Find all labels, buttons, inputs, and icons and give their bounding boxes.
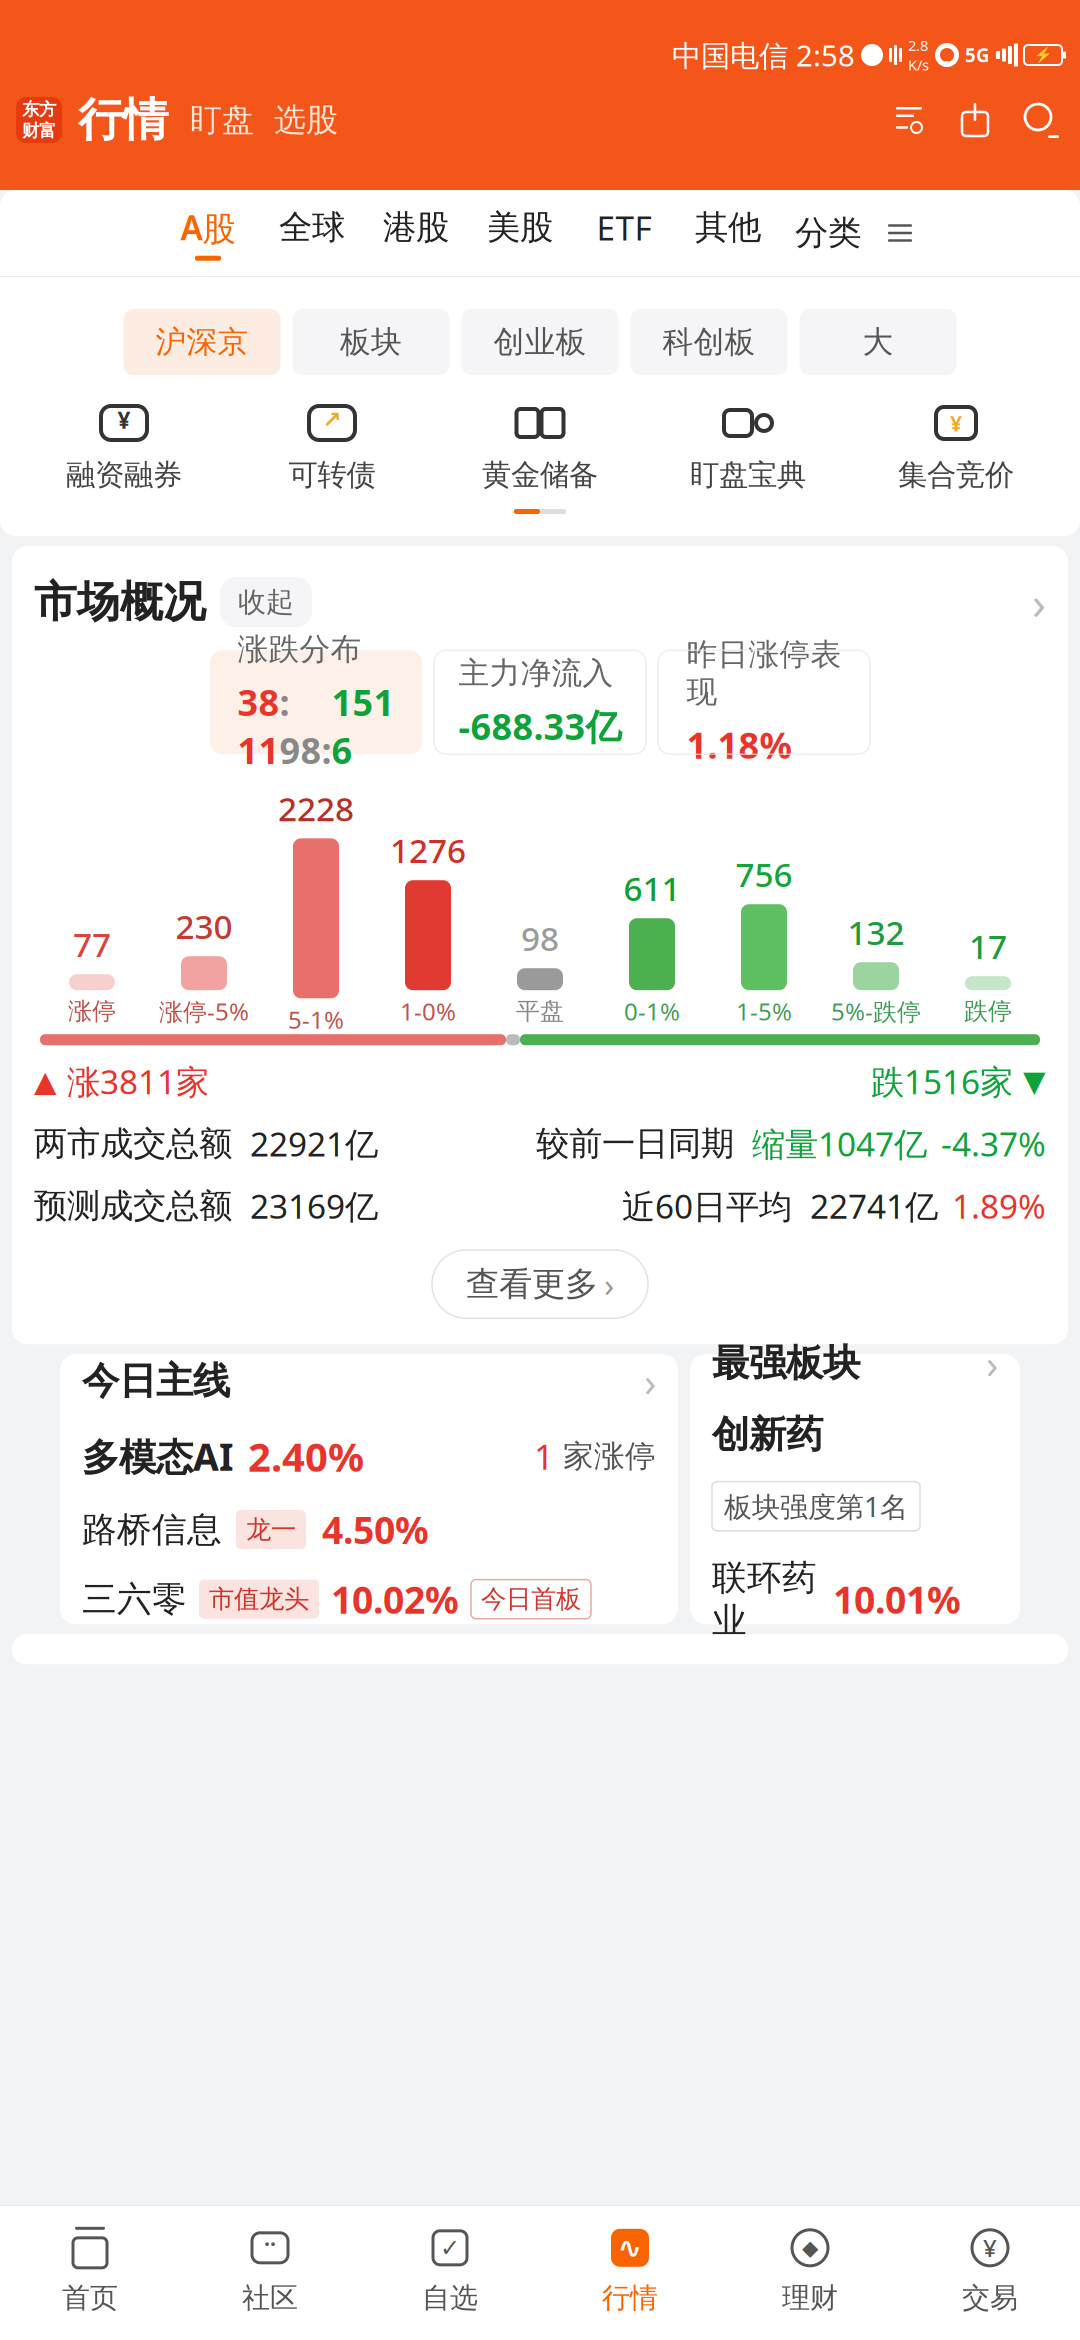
- staticText: 今日主线: [82, 1358, 230, 1404]
- staticText: 5G: [965, 43, 990, 67]
- button[interactable]: 首页: [0, 2218, 180, 2322]
- staticText: 预测成交总额: [34, 1185, 232, 1226]
- button[interactable]: ¥: [20, 391, 228, 503]
- staticText: 港股: [383, 207, 449, 248]
- staticText: 23169亿: [250, 1184, 378, 1228]
- staticText: 涨停: [68, 996, 116, 1026]
- button[interactable]: 分享: [952, 97, 998, 143]
- button[interactable]: 列表设置: [886, 97, 932, 143]
- staticText: ›: [644, 1355, 656, 1408]
- button[interactable]: ¥: [900, 2218, 1080, 2322]
- staticText: 98: [521, 916, 559, 960]
- button[interactable]: ◆: [720, 2218, 900, 2322]
- staticText: 收起: [238, 585, 294, 619]
- button[interactable]: 美股: [468, 193, 572, 273]
- button[interactable]: ··: [180, 2218, 360, 2322]
- staticText: 主力净流入: [458, 654, 613, 692]
- button[interactable]: 大: [799, 309, 956, 375]
- button[interactable]: 港股: [364, 193, 468, 273]
- button[interactable]: 最强板块: [690, 1354, 1020, 1624]
- staticText: 分类: [795, 212, 861, 253]
- button[interactable]: 搜索: [1018, 97, 1064, 143]
- staticText: 市值龙头: [209, 1584, 309, 1615]
- button[interactable]: 昨日涨停表现: [658, 650, 870, 754]
- staticText: 盯盘宝典: [690, 457, 806, 493]
- staticText: 平盘: [516, 996, 564, 1026]
- staticText: 涨跌分布: [237, 631, 361, 668]
- button[interactable]: 科创板: [630, 309, 787, 375]
- staticText: 77: [73, 922, 111, 966]
- button[interactable]: 选股: [274, 100, 338, 140]
- staticText: 大: [862, 323, 893, 361]
- staticText: ¥: [983, 2232, 997, 2264]
- staticText: 三六零: [82, 1578, 187, 1620]
- button[interactable]: 东方财富: [16, 97, 62, 143]
- staticText: 东方 财富: [22, 99, 56, 141]
- staticText: ›: [604, 1262, 614, 1306]
- staticText: 理财: [782, 2281, 838, 2315]
- button[interactable]: 沪深京: [123, 309, 280, 375]
- staticText: 跌停: [964, 996, 1012, 1026]
- staticText: 1.89%: [952, 1184, 1046, 1228]
- button[interactable]: 今日主线: [60, 1354, 678, 1624]
- staticText: 龙一: [246, 1514, 296, 1545]
- button[interactable]: ↗: [228, 391, 436, 503]
- staticText: 611: [623, 866, 680, 910]
- button[interactable]: ✓: [360, 2218, 540, 2322]
- button[interactable]: 主力净流入: [434, 650, 646, 754]
- button[interactable]: 查看更多: [432, 1250, 648, 1318]
- staticText: 交易: [962, 2281, 1018, 2315]
- staticText: 近60日平均: [622, 1184, 792, 1228]
- staticText: 230: [175, 904, 232, 948]
- staticText: 可转债: [288, 457, 375, 493]
- staticText: 盯盘: [190, 100, 254, 140]
- staticText: 板块强度第1名: [724, 1488, 908, 1525]
- button[interactable]: 行情: [78, 92, 168, 148]
- staticText: ›: [986, 1337, 998, 1390]
- staticText: 沪深京: [155, 323, 248, 361]
- staticText: -688.33亿: [458, 702, 621, 750]
- staticText: 涨停-5%: [159, 995, 249, 1027]
- staticText: 市场概况: [34, 576, 206, 628]
- staticText: 2.8 K/s: [908, 35, 929, 74]
- staticText: 2228: [278, 786, 354, 830]
- staticText: 1: [534, 1433, 554, 1479]
- button[interactable]: 涨跌分布: [210, 650, 422, 754]
- button[interactable]: 全球: [260, 193, 364, 273]
- staticText: 创新药: [712, 1412, 823, 1458]
- button[interactable]: ¥: [852, 391, 1060, 503]
- staticText: 5%-跌停: [831, 995, 921, 1027]
- staticText: ¥: [117, 405, 130, 435]
- button[interactable]: 黄金储备: [436, 391, 644, 503]
- staticText: ›: [1032, 572, 1046, 632]
- staticText: 22741亿: [810, 1184, 938, 1228]
- button[interactable]: 板块: [292, 309, 449, 375]
- staticText: :98:: [279, 678, 331, 774]
- staticText: 最强板块: [712, 1340, 860, 1386]
- staticText: 1516: [331, 678, 394, 774]
- staticText: 行情: [78, 92, 168, 148]
- button[interactable]: ETF: [572, 193, 676, 273]
- staticText: 多模态AI: [82, 1431, 234, 1481]
- button[interactable]: 更多: [876, 195, 924, 271]
- button[interactable]: 盯盘宝典: [644, 391, 852, 503]
- button[interactable]: 分类: [780, 195, 876, 271]
- button[interactable]: 创业板: [461, 309, 618, 375]
- staticText: ∿: [617, 2231, 642, 2264]
- staticText: 4.50%: [322, 1505, 429, 1554]
- button[interactable]: ∿: [540, 2218, 720, 2322]
- button[interactable]: A股: [156, 193, 260, 273]
- button[interactable]: 市场概况: [12, 546, 1068, 650]
- staticText: ↗: [322, 407, 341, 433]
- staticText: ◆: [802, 2236, 818, 2260]
- button[interactable]: 其他: [676, 193, 780, 273]
- staticText: 5-1%: [288, 1003, 344, 1035]
- staticText: 中国电信 2:58: [672, 35, 855, 74]
- staticText: 选股: [274, 100, 338, 140]
- staticText: 社区: [242, 2281, 298, 2315]
- staticText: 全球: [279, 207, 345, 248]
- staticText: 今日首板: [481, 1584, 581, 1615]
- staticText: ETF: [596, 205, 651, 250]
- staticText: 3811: [237, 678, 279, 774]
- button[interactable]: 盯盘: [190, 100, 254, 140]
